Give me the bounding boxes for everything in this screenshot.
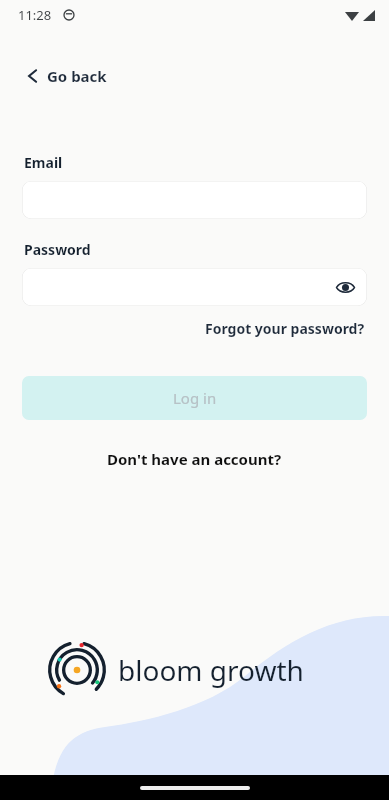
- staticText: bloom growth: [118, 651, 304, 689]
- staticText: 11:28: [18, 6, 52, 24]
- button[interactable]: Show password: [22, 268, 367, 306]
- button[interactable]: Log in: [22, 376, 367, 420]
- staticText: Password: [24, 240, 91, 259]
- button[interactable]: Don't have an account?: [103, 446, 286, 472]
- button[interactable]: Forgot your password?: [203, 317, 367, 340]
- button[interactable]: [22, 181, 367, 219]
- staticText: Email: [24, 153, 63, 172]
- staticText: Go back: [47, 66, 107, 86]
- button[interactable]: Go back: [22, 62, 111, 90]
- button[interactable]: Show password: [331, 273, 359, 301]
- staticText: Log in: [173, 388, 217, 408]
